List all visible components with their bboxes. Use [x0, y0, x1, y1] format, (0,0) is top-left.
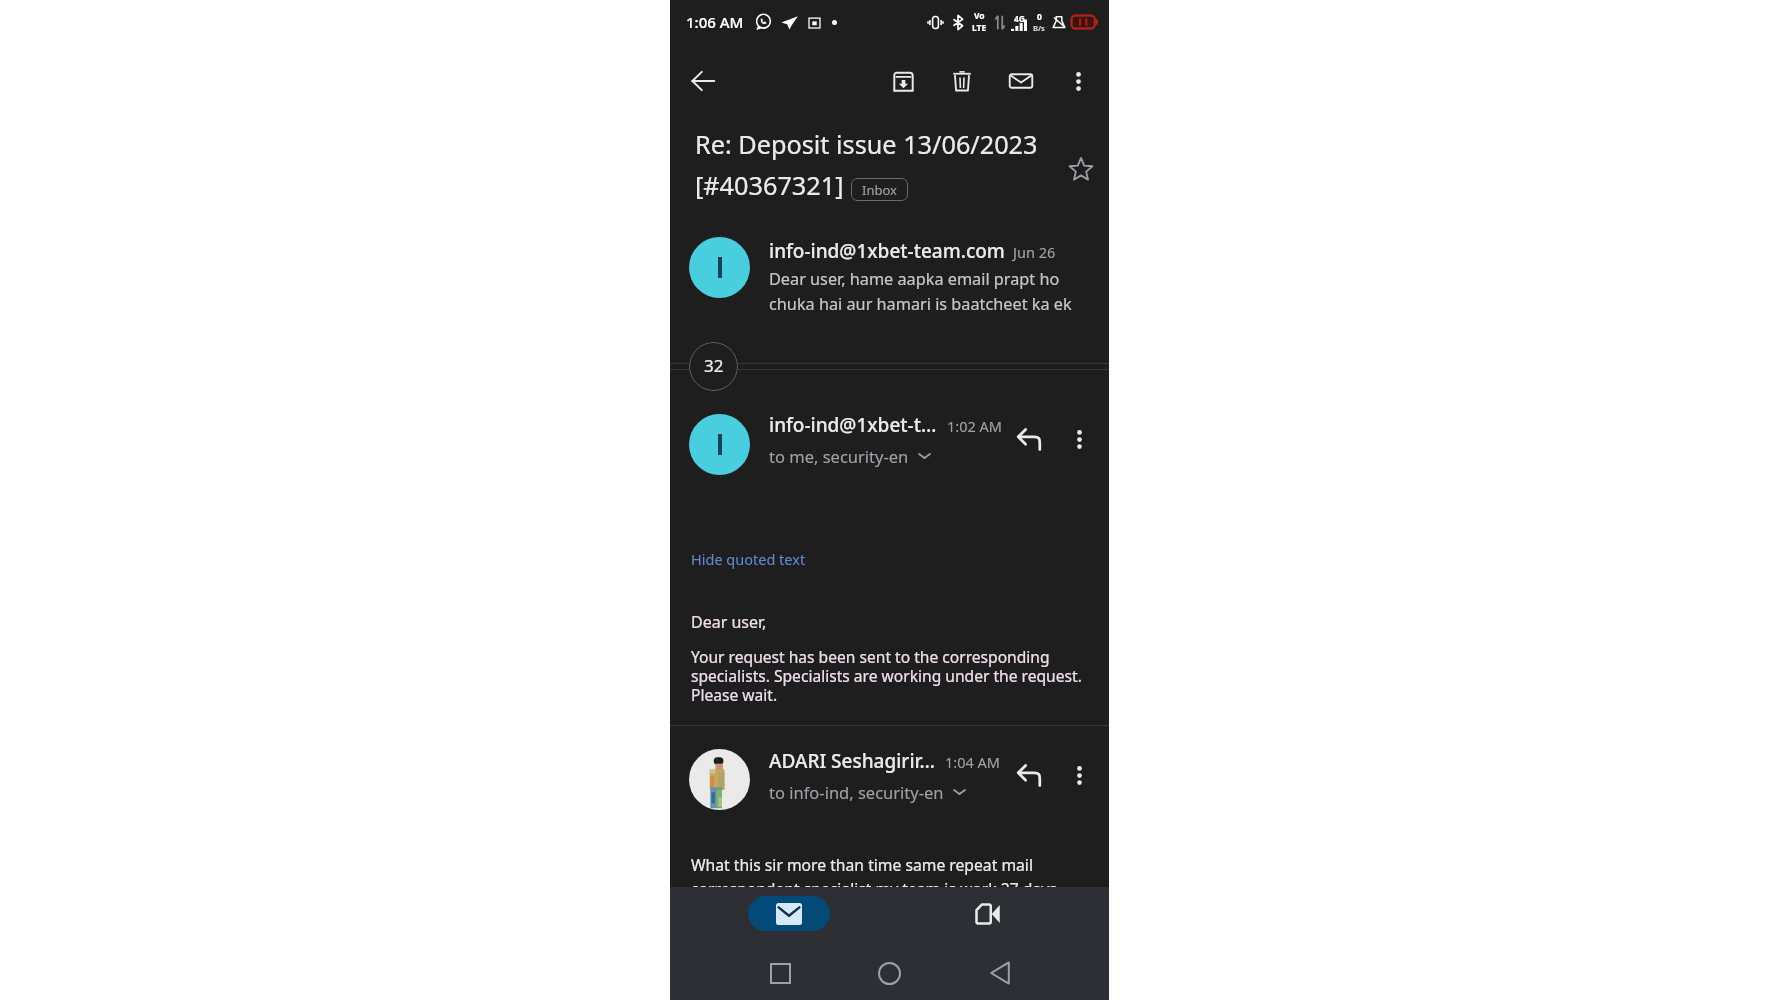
staticText: to info-ind, security-en: [769, 781, 944, 803]
staticText: 0: [1037, 11, 1042, 23]
staticText: B/s: [1033, 23, 1045, 33]
button[interactable]: Reply: [1010, 756, 1048, 794]
staticText: ADARI Seshagirir…: [769, 748, 935, 774]
staticText: LTE: [972, 22, 987, 34]
button[interactable]: Reply: [1010, 420, 1048, 458]
button[interactable]: Recents: [759, 952, 801, 994]
button[interactable]: More options: [1060, 756, 1098, 794]
staticText: Inbox: [862, 181, 897, 199]
button[interactable]: More options: [1060, 420, 1098, 458]
button[interactable]: Video call: [969, 896, 1005, 932]
staticText: to me, security-en: [769, 445, 909, 467]
staticText: Jun 26: [1013, 242, 1056, 262]
staticText: 1:02 AM: [947, 416, 1002, 436]
button[interactable]: to info-ind, security-en: [769, 781, 966, 803]
button[interactable]: Mark unread: [1002, 62, 1040, 100]
button[interactable]: Home: [868, 952, 910, 994]
staticText: Dear user,: [691, 611, 767, 633]
button[interactable]: Back: [979, 952, 1021, 994]
staticText: info-ind@1xbet-team.com: [769, 238, 1005, 264]
staticText: info-ind@1xbet-t…: [769, 412, 937, 438]
staticText: Re: Deposit issue 13/06/2023 [#40367321]: [695, 127, 1038, 203]
staticText: What this sir more than time same repeat…: [691, 854, 1057, 899]
staticText: 1:06 AM: [686, 12, 744, 32]
button[interactable]: Hide quoted text: [691, 549, 806, 569]
button[interactable]: Back: [684, 62, 722, 100]
button[interactable]: More options: [1059, 62, 1097, 100]
staticText: 4G: [1014, 13, 1026, 25]
button[interactable]: Reply: [748, 896, 830, 931]
button[interactable]: Inbox: [851, 178, 908, 201]
button[interactable]: Show 32 hidden messages: [689, 342, 738, 391]
staticText: Dear user, hame aapka email prapt ho chu…: [769, 268, 1072, 315]
button[interactable]: to me, security-en: [769, 445, 931, 467]
button[interactable]: Delete: [943, 62, 981, 100]
button[interactable]: Archive: [884, 62, 922, 100]
staticText: 1:04 AM: [945, 752, 1000, 772]
button[interactable]: Star: [1062, 150, 1100, 188]
staticText: 32: [704, 354, 724, 377]
staticText: Hide quoted text: [691, 549, 806, 569]
staticText: Vo: [974, 10, 985, 22]
staticText: Your request has been sent to the corres…: [691, 646, 1082, 706]
